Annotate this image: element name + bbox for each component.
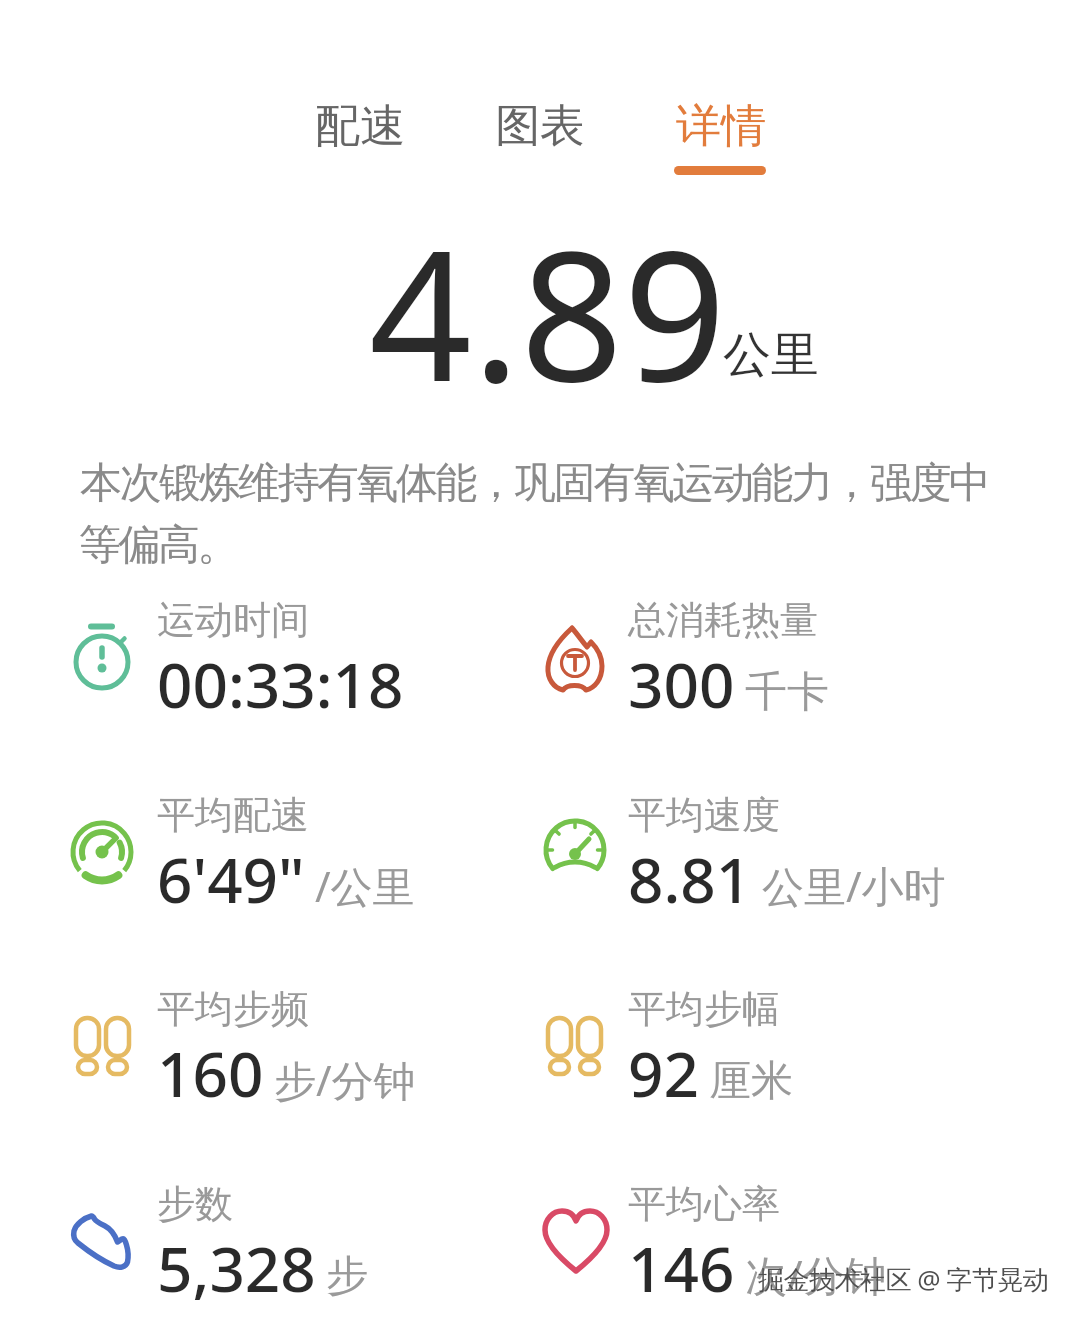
staticText: 00:33:18 bbox=[157, 642, 404, 726]
staticText: 总消耗热量 bbox=[628, 596, 818, 644]
staticText: 步/分钟 bbox=[274, 1051, 416, 1108]
staticText: 步 bbox=[326, 1250, 368, 1303]
staticText: 千卡 bbox=[745, 666, 829, 719]
staticText: 300 bbox=[628, 642, 735, 726]
staticText: 146 bbox=[628, 1226, 735, 1310]
staticText: 4.89 bbox=[369, 189, 727, 434]
staticText: 步数 bbox=[157, 1180, 233, 1228]
staticText: 配速 bbox=[315, 98, 405, 155]
button[interactable]: 详情 bbox=[631, 92, 811, 160]
staticText: 8.81 bbox=[628, 837, 752, 921]
staticText: 6'49" bbox=[157, 837, 305, 921]
staticText: 平均速度 bbox=[628, 791, 780, 839]
staticText: 公里 bbox=[723, 325, 819, 385]
staticText: 本次锻炼维持有氧体能，巩固有氧运动能力，强度中 bbox=[80, 457, 989, 510]
button[interactable]: 配速 bbox=[270, 92, 450, 160]
staticText: 平均步频 bbox=[157, 985, 309, 1033]
staticText: 详情 bbox=[676, 98, 766, 155]
staticText: 厘米 bbox=[709, 1055, 793, 1108]
staticText: 平均配速 bbox=[157, 791, 309, 839]
staticText: 5,328 bbox=[157, 1226, 316, 1310]
staticText: 公里/小时 bbox=[762, 857, 946, 914]
staticText: 掘金技术社区 @ 字节晃动 bbox=[758, 1261, 1049, 1297]
staticText: 图表 bbox=[495, 98, 585, 155]
staticText: 平均心率 bbox=[628, 1180, 780, 1228]
staticText: 等偏高。 bbox=[80, 519, 238, 572]
staticText: 92 bbox=[628, 1031, 699, 1115]
staticText: 次/分钟 bbox=[745, 1246, 887, 1303]
staticText: 160 bbox=[157, 1031, 264, 1115]
staticText: /公里 bbox=[315, 857, 415, 914]
staticText: 运动时间 bbox=[157, 596, 309, 644]
staticText: 平均步幅 bbox=[628, 985, 780, 1033]
button[interactable]: 图表 bbox=[450, 92, 630, 160]
